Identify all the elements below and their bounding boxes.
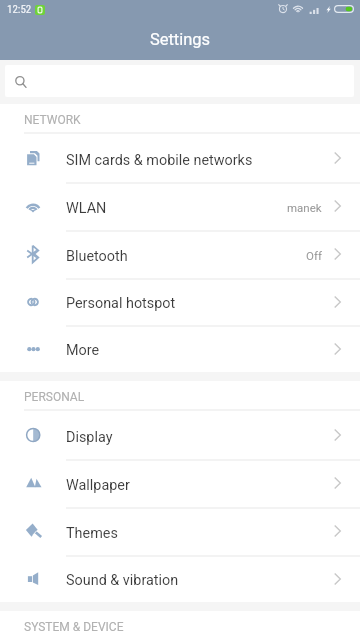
staticText: Settings — [0, 30, 360, 49]
button[interactable]: Bluetooth — [0, 230, 360, 278]
staticText: Sound & vibration — [66, 572, 179, 589]
staticText: Wallpaper — [66, 477, 130, 494]
staticText: PERSONAL — [24, 390, 85, 404]
button[interactable]: SIM cards & mobile networks — [0, 134, 360, 182]
staticText: Bluetooth — [66, 248, 128, 265]
button[interactable]: Search settings — [5, 65, 354, 97]
button[interactable]: Display — [0, 411, 360, 459]
staticText: Display — [66, 429, 113, 446]
button[interactable]: Themes — [0, 507, 360, 555]
staticText: SYSTEM & DEVICE — [24, 620, 124, 634]
button[interactable]: Wallpaper — [0, 459, 360, 507]
staticText: Themes — [66, 525, 118, 542]
button[interactable]: Personal hotspot — [0, 278, 360, 325]
staticText: More — [66, 342, 100, 359]
button[interactable]: More — [0, 325, 360, 372]
staticText: Personal hotspot — [66, 295, 176, 312]
staticText: manek — [287, 201, 322, 214]
staticText: Off — [306, 249, 322, 262]
staticText: SIM cards & mobile networks — [66, 152, 253, 169]
staticText: WLAN — [66, 200, 107, 217]
button[interactable]: Sound & vibration — [0, 555, 360, 602]
staticText: NETWORK — [24, 113, 81, 127]
staticText: 12:52 — [7, 3, 32, 16]
button[interactable]: WLAN — [0, 182, 360, 230]
